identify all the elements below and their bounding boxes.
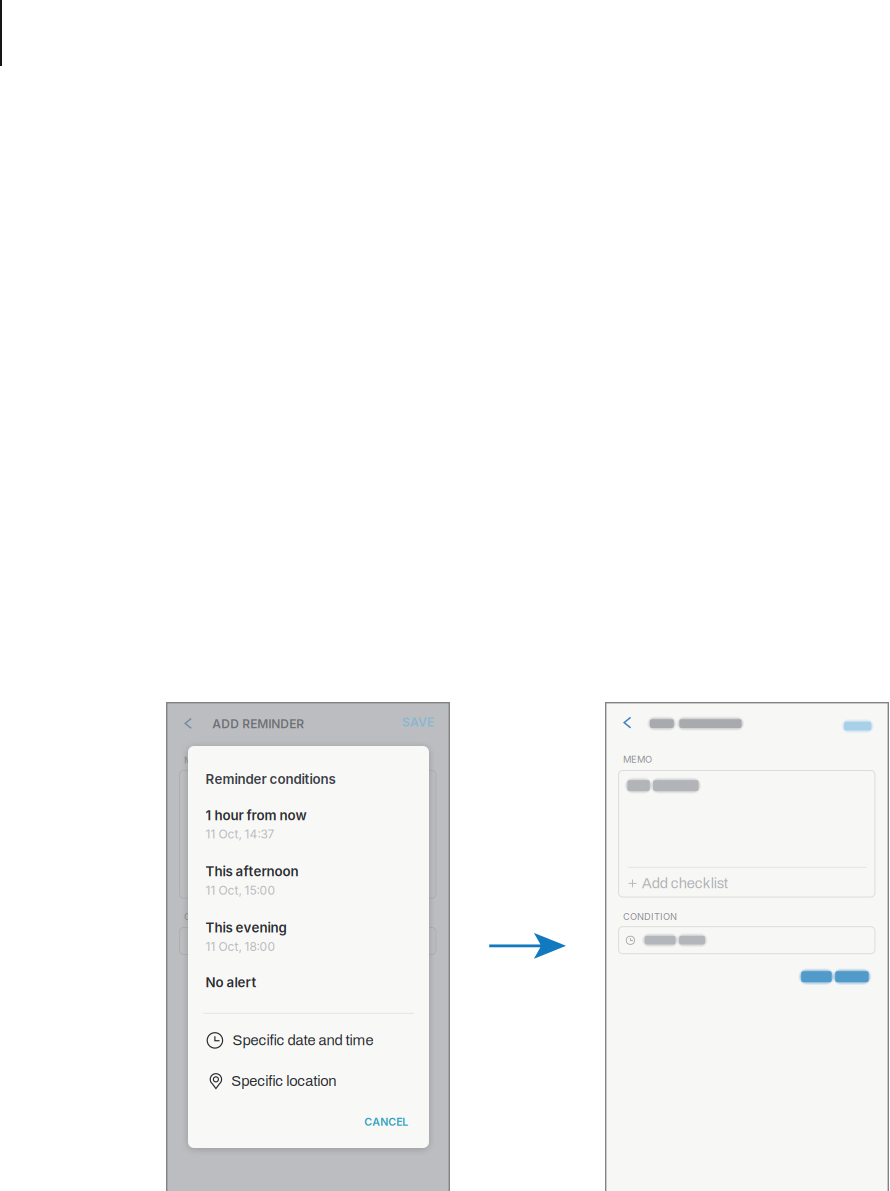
staticText: 11 Oct, 15:00 (205, 883, 275, 897)
staticText: This afternoon (205, 863, 298, 879)
button[interactable]: Save (841, 717, 874, 735)
staticText: Specific location (231, 1073, 336, 1089)
button[interactable]: This afternoon (205, 863, 410, 898)
button[interactable]: CANCEL (364, 1112, 408, 1131)
staticText: ADD REMINDER (212, 717, 304, 731)
staticText: Specific date and time (232, 1032, 373, 1048)
button[interactable]: Specific location (210, 1072, 415, 1090)
button[interactable]: Back (623, 713, 639, 733)
staticText: This evening (205, 920, 286, 936)
staticText: SAVE (402, 715, 434, 729)
staticText: CANCEL (364, 1115, 408, 1128)
staticText: No alert (205, 974, 256, 990)
staticText: CONDITION (184, 911, 238, 922)
button[interactable]: Back (184, 714, 200, 732)
staticText: 11 Oct, 18:00 (205, 939, 275, 954)
staticText: MEMO (184, 754, 213, 766)
staticText: 1 hour from now (205, 807, 306, 823)
staticText: 11 Oct, 14:37 (205, 827, 274, 841)
button[interactable]: SAVE (402, 712, 434, 732)
button[interactable]: View more (799, 969, 871, 985)
button[interactable]: 1 hour from now (205, 807, 410, 841)
button[interactable] (619, 927, 875, 954)
staticText: Reminder conditions (205, 771, 335, 787)
button[interactable]: Add checklist (629, 870, 759, 896)
button[interactable]: No alert (205, 976, 410, 989)
button[interactable]: This evening (205, 920, 410, 954)
staticText: CONDITION (623, 911, 677, 922)
staticText: Add checklist (642, 875, 728, 891)
button[interactable]: Specific date and time (207, 1031, 412, 1049)
staticText: MEMO (623, 754, 652, 765)
